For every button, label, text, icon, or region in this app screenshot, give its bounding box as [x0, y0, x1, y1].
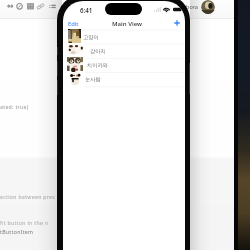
staticText: 눈사람	[85, 76, 101, 83]
button[interactable]: Add	[174, 20, 180, 26]
staticText: bora	[186, 3, 198, 10]
button[interactable]: Quote	[6, 2, 15, 11]
staticText: Main View	[112, 20, 143, 28]
staticText: 고양이	[83, 34, 99, 41]
button[interactable]: Link	[36, 2, 45, 11]
button[interactable]: Account	[201, 0, 215, 14]
staticText: 6:41	[80, 6, 93, 14]
staticText: 강아지	[90, 48, 106, 55]
staticText: Edit	[68, 20, 79, 28]
button[interactable]	[63, 58, 185, 72]
button[interactable]	[63, 73, 185, 87]
button[interactable]: More	[60, 2, 69, 11]
button[interactable]	[63, 44, 185, 58]
button[interactable]: List	[48, 2, 57, 11]
staticText: tButtonItem	[0, 228, 34, 235]
staticText: ated: true)	[0, 103, 32, 110]
button[interactable]: Emoji	[15, 2, 24, 11]
button[interactable]: Edit	[68, 20, 79, 28]
button[interactable]: Table	[26, 2, 35, 11]
button[interactable]	[63, 30, 185, 44]
staticText: ection between pres	[0, 193, 56, 200]
staticText: 치이카와	[87, 62, 108, 69]
staticText: fit button in the n	[0, 219, 49, 226]
